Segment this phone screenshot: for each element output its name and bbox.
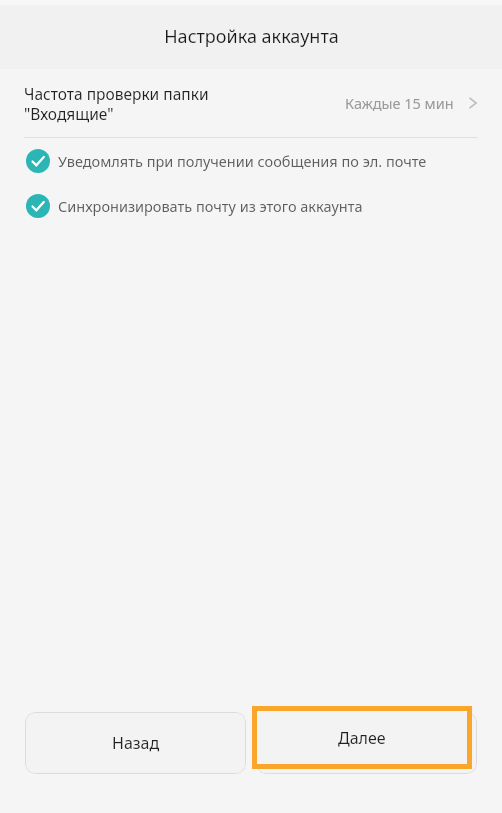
button[interactable]: Далее — [257, 711, 467, 764]
button[interactable]: Частота проверки папки "Входящие" — [0, 69, 502, 137]
button[interactable]: Уведомлять при получении сообщения по эл… — [0, 138, 502, 183]
staticText: Уведомлять при получении сообщения по эл… — [58, 151, 427, 171]
staticText: Каждые 15 мин — [345, 93, 454, 113]
staticText: Назад — [112, 732, 160, 754]
staticText: Настройка аккаунта — [164, 24, 339, 49]
staticText: Частота проверки папки "Входящие" — [24, 83, 345, 124]
button[interactable]: Назад — [25, 712, 246, 774]
button[interactable]: Синхронизировать почту из этого аккаунта — [0, 183, 502, 228]
staticText: Синхронизировать почту из этого аккаунта — [58, 196, 363, 216]
staticText: Далее — [338, 727, 386, 749]
